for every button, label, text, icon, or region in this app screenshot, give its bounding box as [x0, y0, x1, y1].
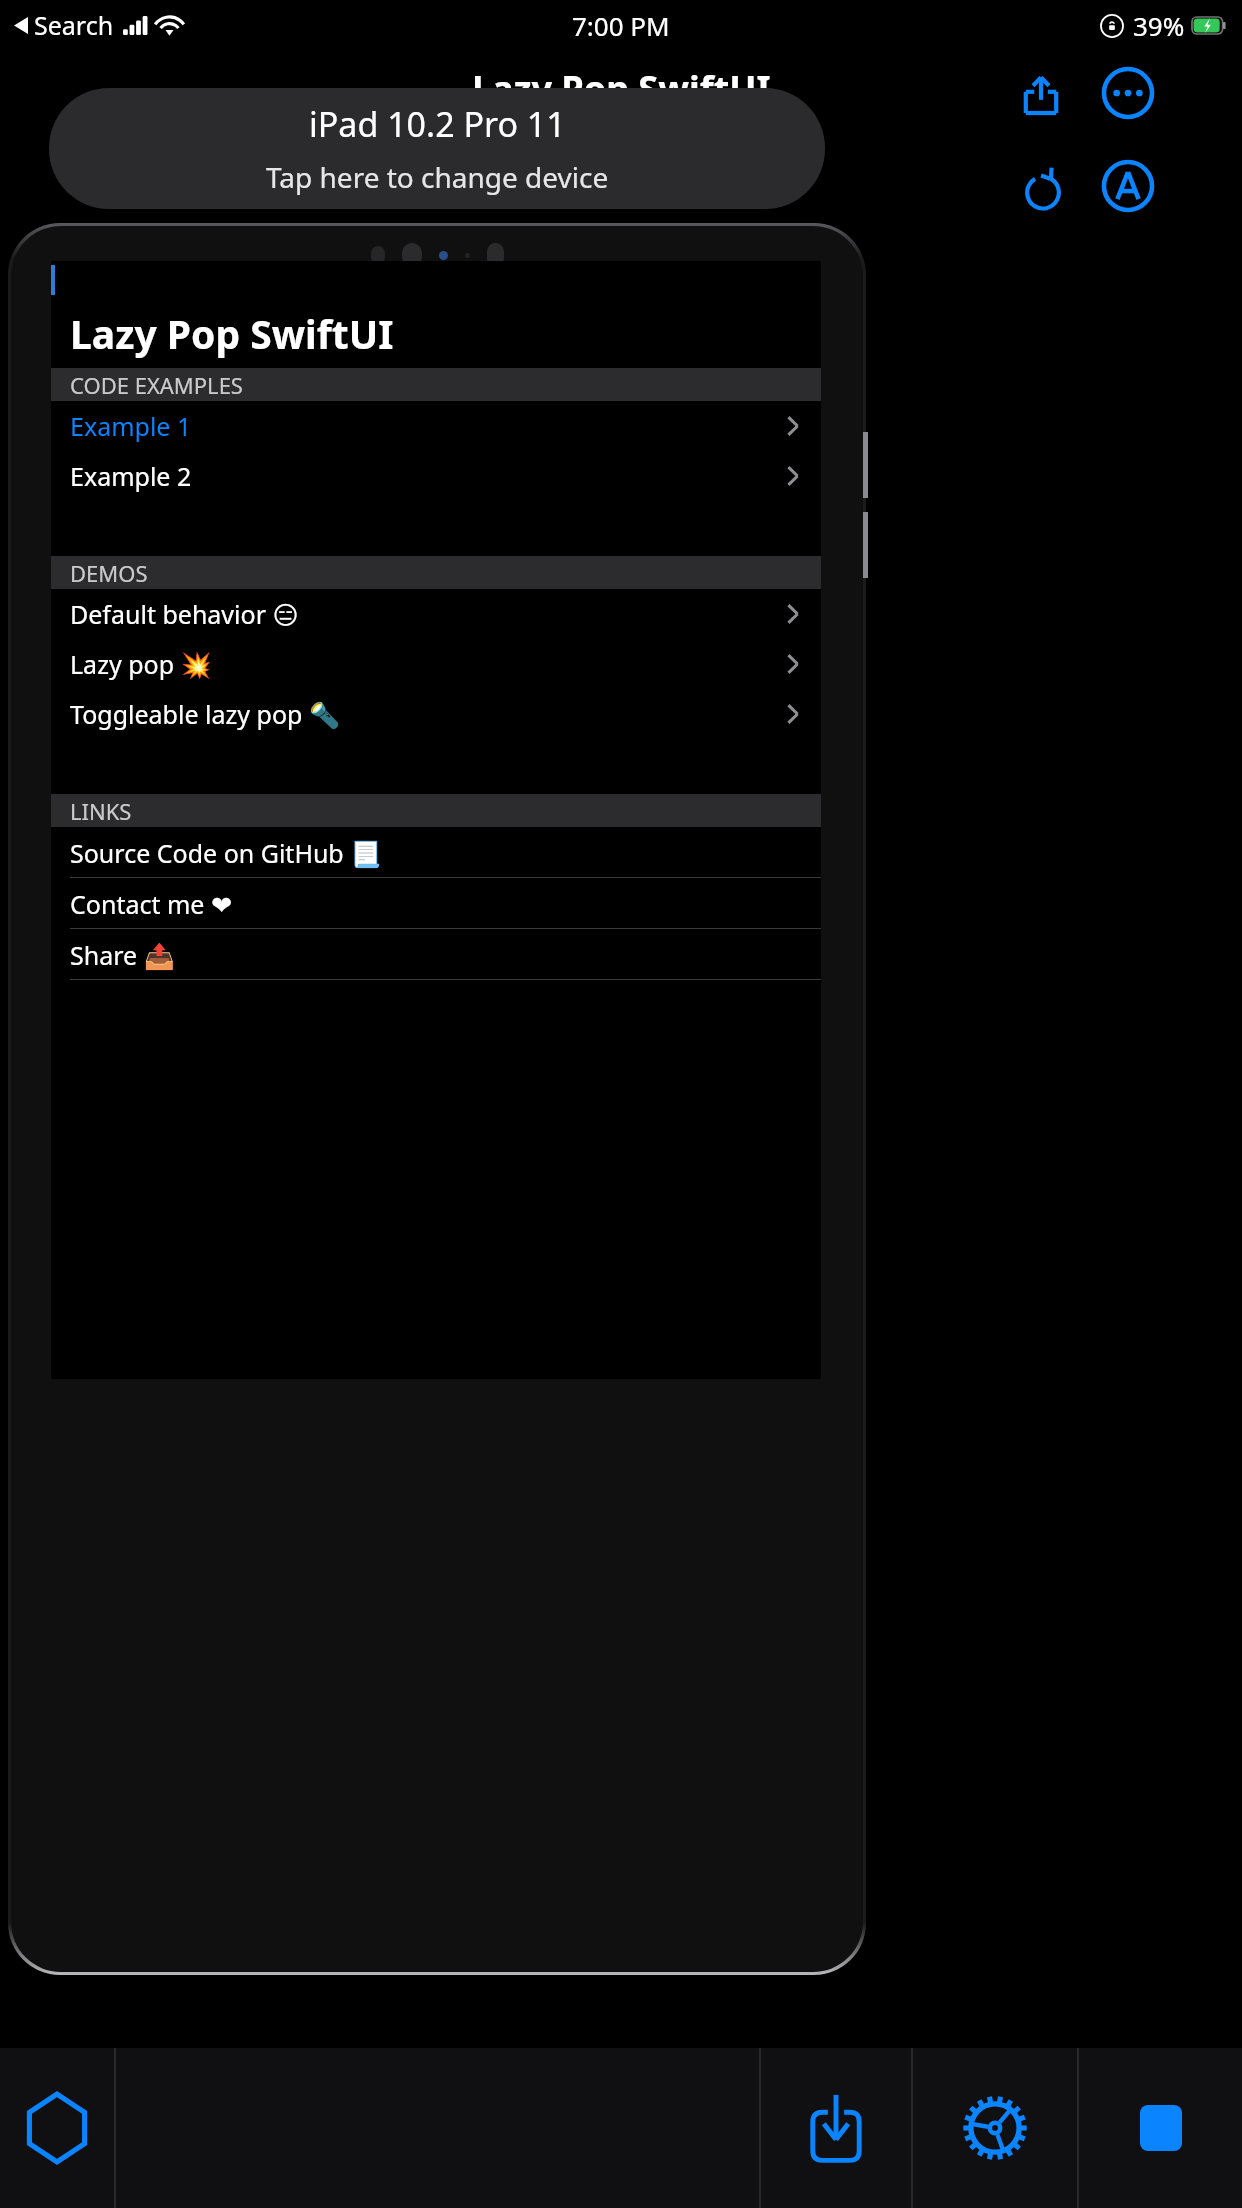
staticText: Search	[34, 8, 114, 42]
staticText: Default behavior 😑	[70, 597, 299, 631]
staticText: Lazy Pop SwiftUI	[472, 64, 771, 113]
staticText: DEMOS	[70, 558, 148, 588]
button[interactable]: Example 1	[51, 401, 821, 451]
staticText: Example 2	[70, 459, 192, 493]
button[interactable]: Share	[1008, 62, 1074, 128]
button[interactable]: Settings	[913, 2048, 1077, 2208]
staticText: Share 📤	[70, 938, 175, 972]
staticText: Lazy pop 💥	[70, 647, 212, 681]
button[interactable]: Accessibility inspector	[1090, 148, 1166, 224]
staticText: Contact me ❤️	[70, 887, 232, 921]
staticText: 7:00 PM	[572, 8, 670, 43]
staticText: 39%	[1133, 8, 1185, 43]
staticText: CODE EXAMPLES	[70, 370, 243, 400]
staticText: Lazy Pop SwiftUI	[70, 307, 394, 360]
staticText: Tap here to change device	[266, 158, 609, 196]
button[interactable]: Share 📤	[51, 929, 821, 980]
staticText: Toggleable lazy pop 🔦	[70, 697, 341, 731]
button[interactable]: Example 2	[51, 451, 821, 501]
staticText: Source Code on GitHub 📃	[70, 836, 382, 870]
button[interactable]: Toggleable lazy pop 🔦	[51, 689, 821, 739]
button[interactable]: Stop	[1079, 2048, 1242, 2208]
button[interactable]: More options	[1090, 55, 1166, 131]
button[interactable]: Default behavior 😑	[51, 589, 821, 639]
button[interactable]: Refresh	[1008, 155, 1078, 225]
staticText: LINKS	[70, 796, 132, 826]
button[interactable]: iPad 10.2 Pro 11	[49, 88, 825, 209]
button[interactable]: Lazy pop 💥	[51, 639, 821, 689]
button[interactable]: Contact me ❤️	[51, 878, 821, 929]
staticText: Example 1	[70, 409, 192, 443]
button[interactable]: Source Code on GitHub 📃	[51, 827, 821, 878]
button[interactable]: Components	[0, 2048, 114, 2208]
staticText: iPad 10.2 Pro 11	[309, 101, 566, 147]
button[interactable]: Install app	[761, 2048, 911, 2208]
